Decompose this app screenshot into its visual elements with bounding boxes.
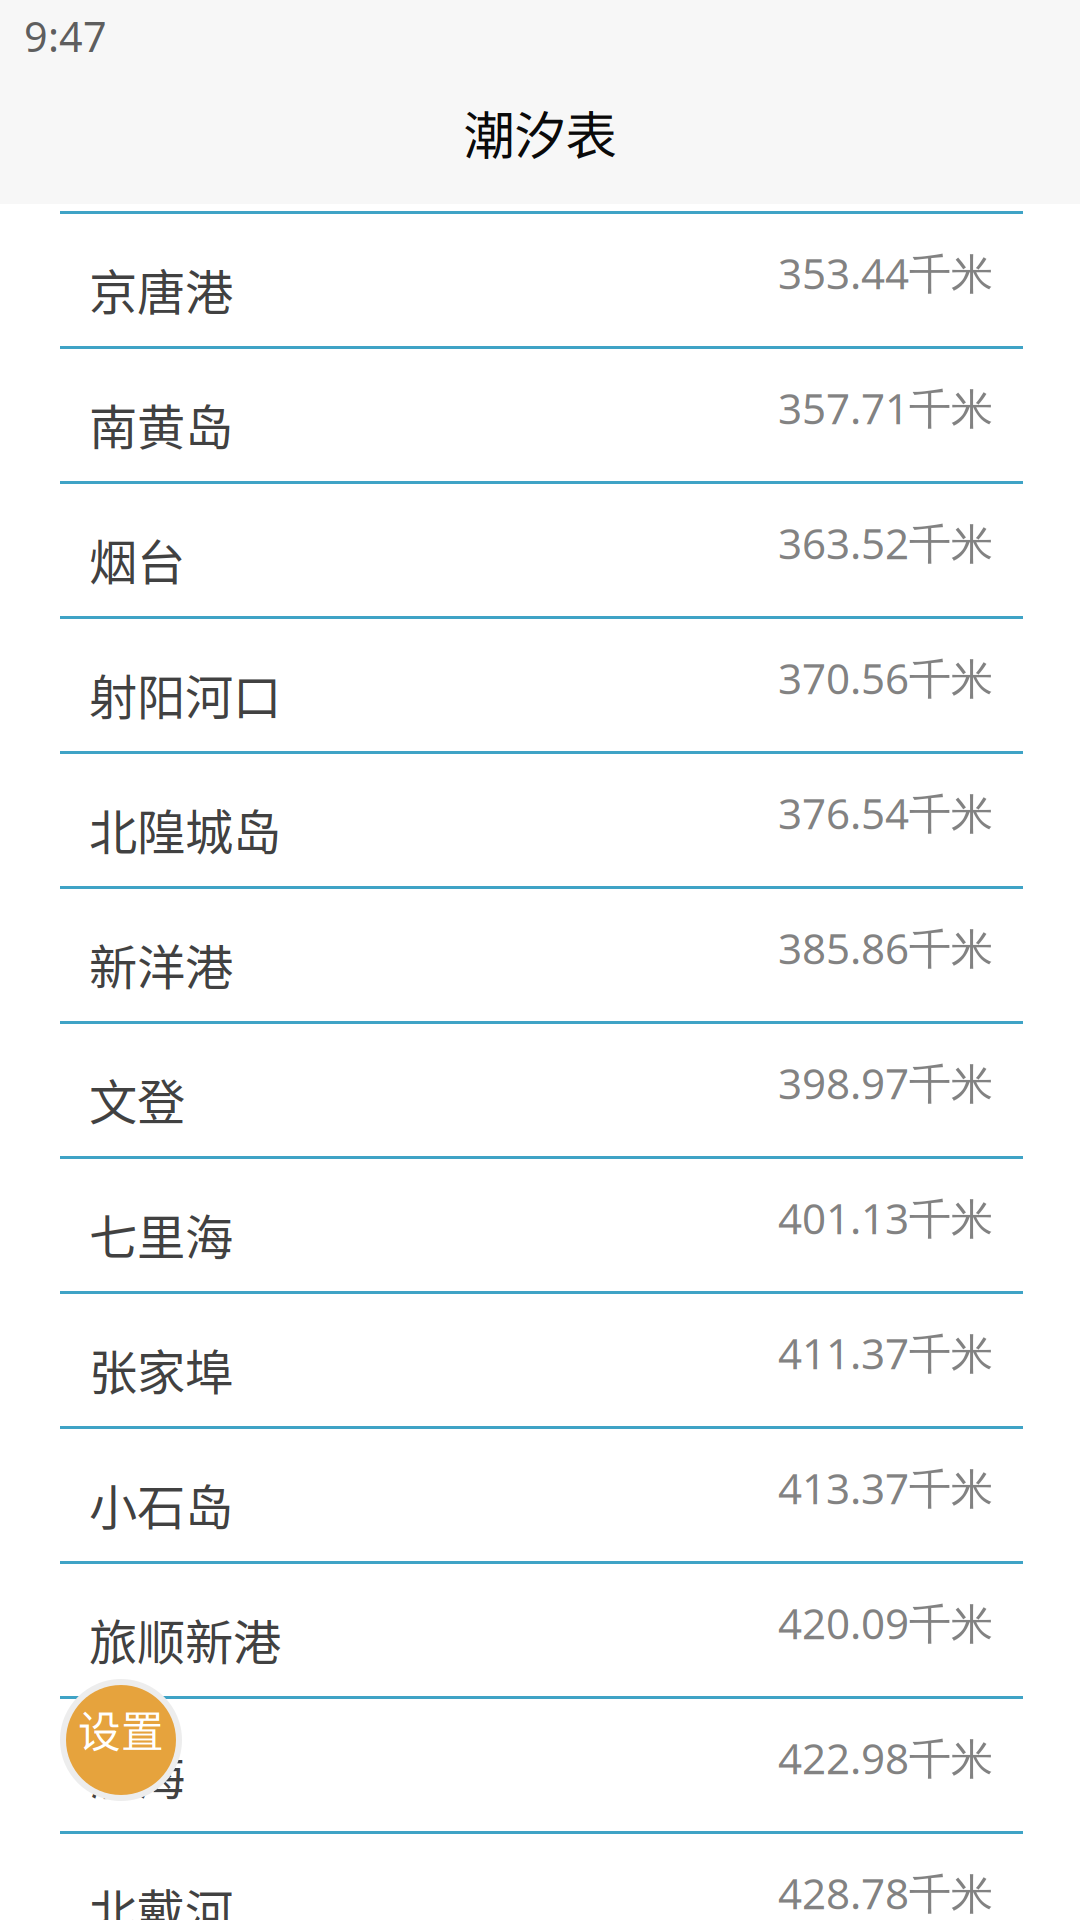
- button[interactable]: 烟台: [60, 484, 1023, 616]
- staticText: 401.13千米: [778, 1189, 993, 1247]
- staticText: 文登: [89, 1064, 185, 1134]
- button[interactable]: 北隍城岛: [60, 754, 1023, 886]
- staticText: 411.37千米: [778, 1324, 993, 1382]
- staticText: 京唐港: [89, 254, 233, 324]
- staticText: 353.44千米: [778, 244, 993, 302]
- button[interactable]: 七里海: [60, 1159, 1023, 1291]
- staticText: 北戴河: [89, 1874, 233, 1920]
- staticText: 413.37千米: [778, 1459, 993, 1517]
- button[interactable]: 渤海: [60, 1699, 1023, 1831]
- staticText: 385.86千米: [778, 919, 993, 977]
- button[interactable]: 北戴河: [60, 1834, 1023, 1920]
- button[interactable]: 张家埠: [60, 1294, 1023, 1426]
- staticText: 射阳河口: [89, 659, 281, 729]
- staticText: 张家埠: [89, 1334, 233, 1404]
- button[interactable]: 小石岛: [60, 1429, 1023, 1561]
- staticText: 新洋港: [89, 929, 233, 999]
- staticText: 376.54千米: [778, 784, 993, 842]
- staticText: 渤海: [89, 1739, 185, 1809]
- staticText: 南黄岛: [89, 389, 233, 459]
- button[interactable]: 京唐港: [60, 214, 1023, 346]
- staticText: 烟台: [89, 524, 185, 594]
- button[interactable]: 文登: [60, 1024, 1023, 1156]
- button[interactable]: 南黄岛: [60, 349, 1023, 481]
- staticText: 北隍城岛: [89, 794, 281, 864]
- staticText: 398.97千米: [778, 1054, 993, 1112]
- staticText: 设置: [78, 1698, 164, 1760]
- button[interactable]: 设置: [60, 1679, 182, 1801]
- staticText: 363.52千米: [778, 514, 993, 572]
- staticText: 428.78千米: [778, 1864, 993, 1920]
- staticText: 潮汐表: [463, 95, 616, 169]
- staticText: 357.71千米: [778, 379, 993, 437]
- staticText: 七里海: [89, 1199, 233, 1269]
- staticText: 小石岛: [89, 1469, 233, 1539]
- staticText: 旅顺新港: [89, 1604, 281, 1674]
- staticText: 370.56千米: [778, 649, 993, 707]
- button[interactable]: 旅顺新港: [60, 1564, 1023, 1696]
- button[interactable]: 射阳河口: [60, 619, 1023, 751]
- staticText: 9:47: [24, 8, 107, 64]
- button[interactable]: 新洋港: [60, 889, 1023, 1021]
- staticText: 422.98千米: [778, 1729, 993, 1787]
- staticText: 420.09千米: [778, 1594, 993, 1652]
